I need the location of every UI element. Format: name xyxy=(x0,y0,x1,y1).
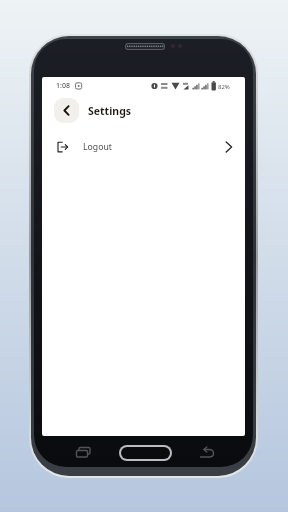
button[interactable] xyxy=(54,98,79,123)
button[interactable] xyxy=(119,445,172,461)
staticText: 1:08 xyxy=(56,81,70,91)
staticText: Settings xyxy=(88,104,132,118)
staticText: 82% xyxy=(218,83,230,91)
button[interactable]: Logout xyxy=(42,134,245,160)
staticText: Logout xyxy=(83,141,112,153)
